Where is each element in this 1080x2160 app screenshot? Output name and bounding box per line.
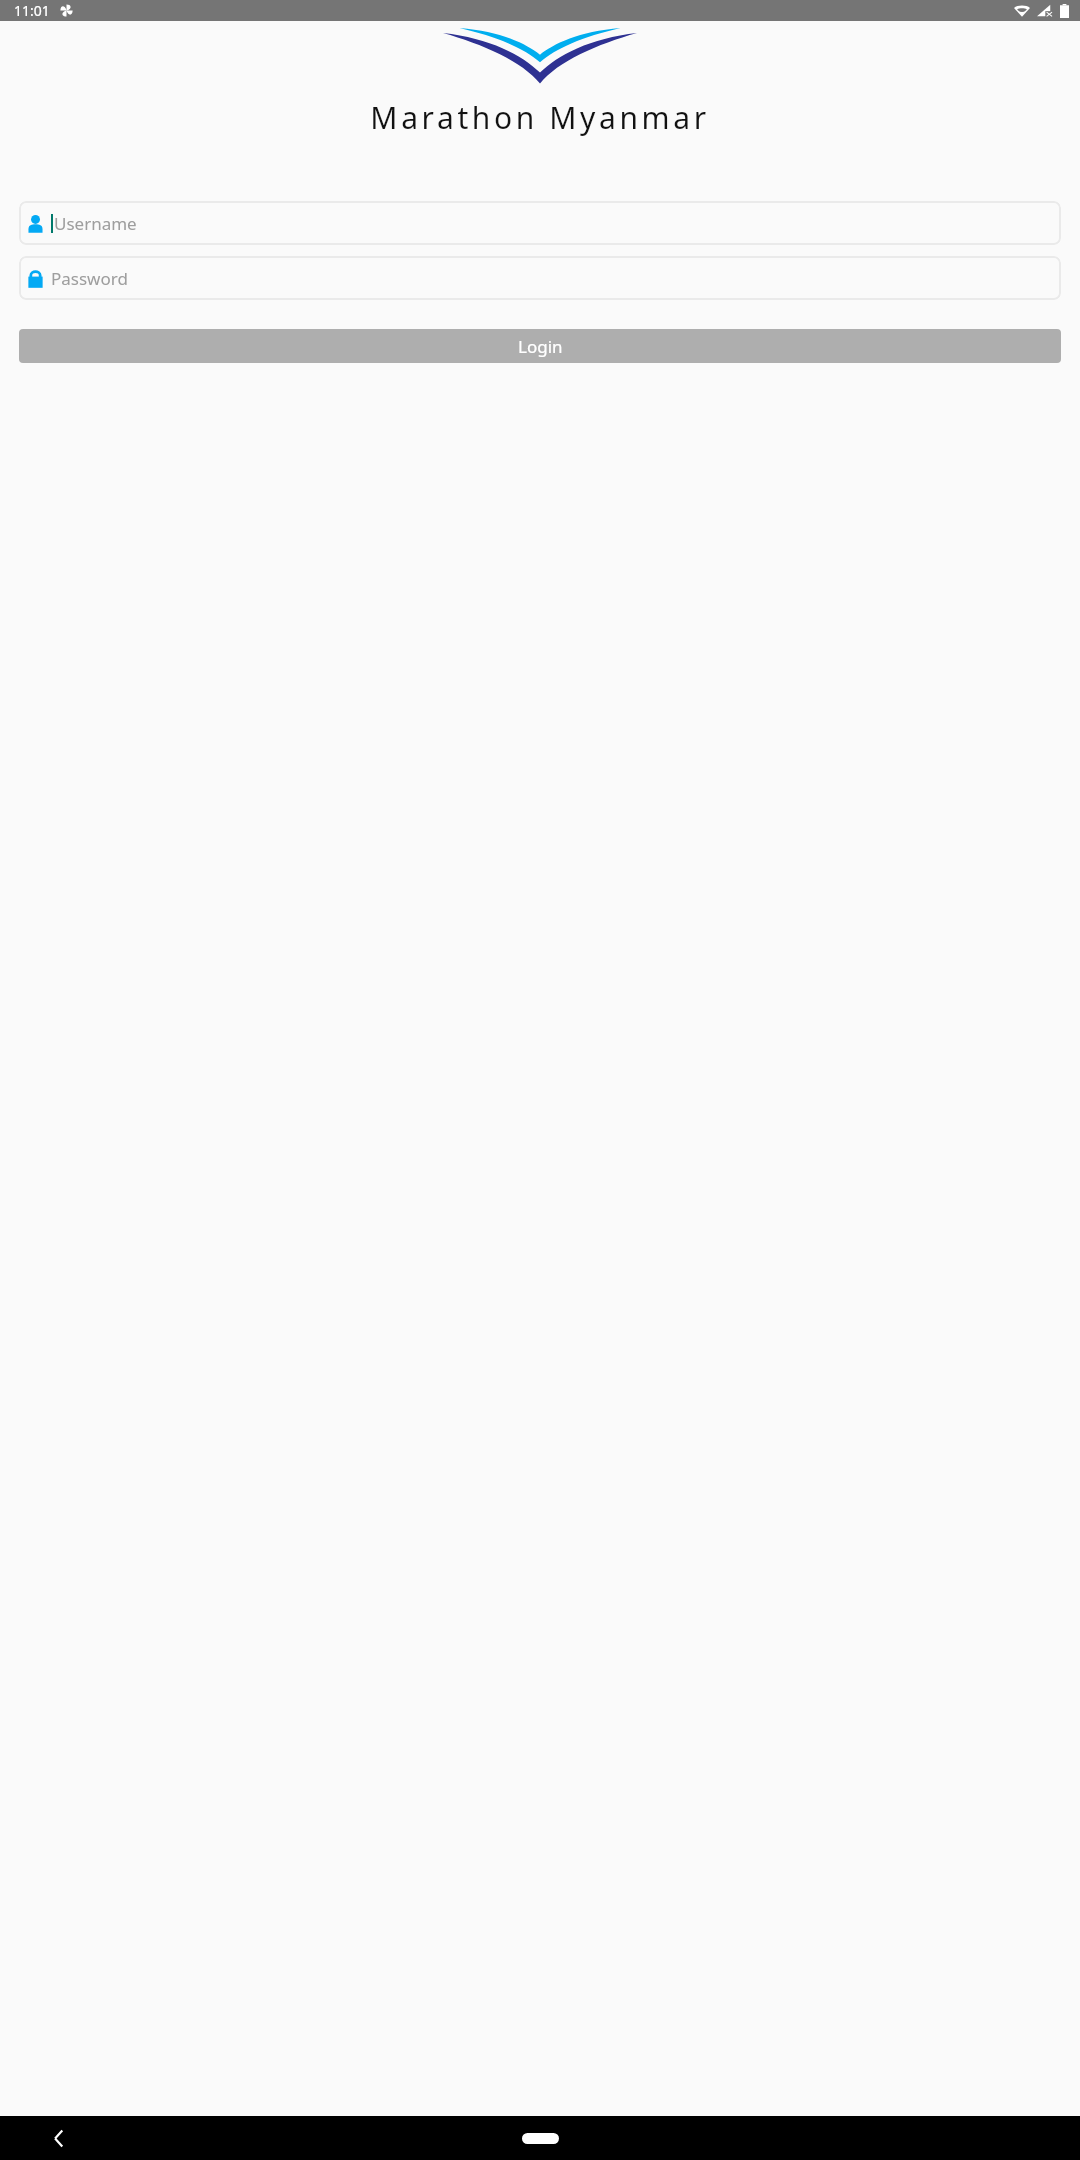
staticText: Marathon Myanmar [0, 97, 1080, 138]
button[interactable]: Username input field [19, 201, 1061, 245]
staticText: Password [51, 267, 128, 290]
staticText: 11:01 [14, 1, 50, 20]
button[interactable]: Back [40, 2120, 76, 2156]
staticText: Login [518, 335, 563, 358]
button[interactable]: Login [19, 329, 1061, 363]
staticText: Username [54, 212, 137, 235]
button[interactable]: Password input field [19, 256, 1061, 300]
button[interactable]: Home [510, 2120, 570, 2156]
